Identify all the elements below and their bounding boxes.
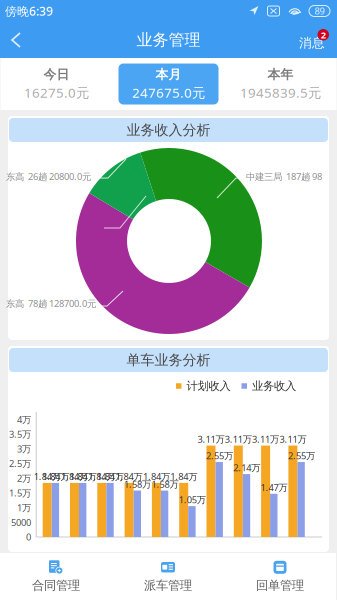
staticText: 1万 xyxy=(17,501,31,514)
staticText: 傍晚6:39 xyxy=(5,3,53,19)
staticText: 1.84万 xyxy=(69,470,96,483)
staticText: 16275.0元 xyxy=(24,83,89,102)
staticText: 1.84万 xyxy=(88,470,115,483)
staticText: 0 xyxy=(26,531,31,543)
staticText: 1.47万 xyxy=(261,481,288,494)
staticText: 中建三局 187趟 98 xyxy=(246,170,322,183)
staticText: 3.11万 xyxy=(225,433,252,445)
staticText: 东高 78趟 128700.0元 xyxy=(6,297,96,310)
button[interactable]: 消息 xyxy=(290,22,337,58)
staticText: 3.11万 xyxy=(252,433,279,445)
button[interactable]: 合同管理 xyxy=(0,553,112,600)
staticText: 1.84万 xyxy=(42,470,69,483)
staticText: 业务收入 xyxy=(252,379,296,393)
staticText: 回单管理 xyxy=(256,578,304,593)
staticText: 4万 xyxy=(17,413,31,426)
staticText: 1.5万 xyxy=(9,486,31,499)
button[interactable]: 今日 xyxy=(0,58,112,110)
staticText: 3.5万 xyxy=(9,428,31,440)
staticText: 1.58万 xyxy=(151,478,178,490)
staticText: 2.55万 xyxy=(206,449,233,462)
staticText: 3万 xyxy=(17,442,31,455)
staticText: 计划收入 xyxy=(186,379,230,393)
staticText: 东高 26趟 20800.0元 xyxy=(6,170,91,183)
staticText: 2万 xyxy=(17,472,31,484)
button[interactable]: 本月 xyxy=(112,58,224,110)
staticText: 1.84万 xyxy=(34,470,61,483)
button[interactable]: 本年 xyxy=(224,58,336,110)
staticText: 2.14万 xyxy=(233,461,260,474)
staticText: 单车业务分析 xyxy=(126,351,210,369)
staticText: 1.84万 xyxy=(116,470,143,483)
staticText: 1.84万 xyxy=(61,470,88,483)
staticText: 1.84万 xyxy=(97,470,124,483)
staticText: 3.11万 xyxy=(279,433,306,445)
staticText: 合同管理 xyxy=(32,578,80,593)
staticText: 2.55万 xyxy=(288,449,315,462)
staticText: 1.05万 xyxy=(179,493,206,506)
staticText: 本月 xyxy=(155,66,181,82)
staticText: 今日 xyxy=(43,66,69,82)
staticText: 1.84万 xyxy=(170,470,197,483)
staticText: 1.84万 xyxy=(143,470,170,483)
staticText: 5000 xyxy=(11,516,31,529)
staticText: 1.58万 xyxy=(124,478,151,490)
button[interactable]: 派车管理 xyxy=(112,553,224,600)
staticText: 业务管理 xyxy=(136,30,200,50)
staticText: 89 xyxy=(314,5,324,17)
staticText: 消息 xyxy=(299,35,325,51)
button[interactable]: 回单管理 xyxy=(224,553,336,600)
staticText: 本年 xyxy=(267,66,293,82)
staticText: 247675.0元 xyxy=(132,83,205,102)
staticText: 3.11万 xyxy=(197,433,224,445)
button[interactable]: 返回 xyxy=(0,22,34,58)
staticText: 2 xyxy=(321,28,326,41)
staticText: 2.5万 xyxy=(9,457,31,470)
staticText: 派车管理 xyxy=(144,578,192,593)
staticText: 1945839.5元 xyxy=(240,83,321,102)
staticText: 业务收入分析 xyxy=(126,121,210,139)
